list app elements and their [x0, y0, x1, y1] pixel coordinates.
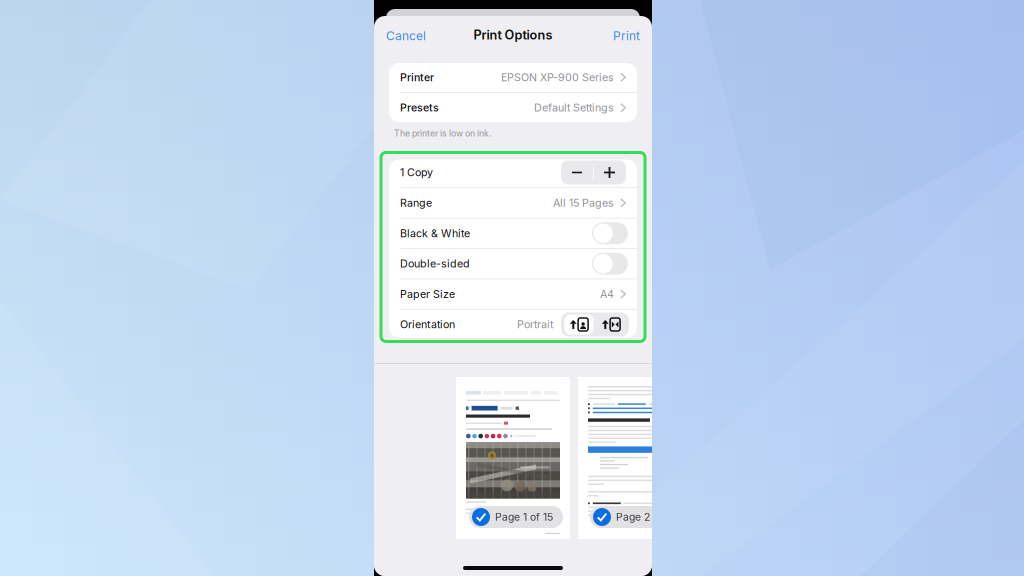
staticText: Paper Size — [400, 288, 455, 300]
staticText: Orientation — [400, 318, 455, 331]
button[interactable]: Double-sided — [592, 253, 628, 275]
staticText: Cancel — [386, 29, 426, 43]
staticText: 1 Copy — [400, 166, 433, 179]
staticText: All 15 Pages — [553, 196, 614, 209]
button[interactable]: Range — [389, 188, 637, 218]
staticText: The printer is low on ink. — [394, 128, 491, 138]
staticText: Printer — [400, 71, 434, 84]
staticText: Presets — [400, 101, 439, 114]
button[interactable]: Landscape orientation — [596, 314, 625, 334]
staticText: Range — [400, 196, 432, 209]
button[interactable]: Presets — [389, 93, 637, 122]
button[interactable]: Page 1 of 15 — [456, 377, 570, 539]
staticText: Page 1 of 15 — [495, 511, 553, 523]
staticText: Print Options — [473, 27, 552, 43]
button[interactable]: Decrease number of copies — [561, 160, 593, 184]
button[interactable]: Page 2 of 15 — [578, 377, 692, 539]
staticText: Black & White — [400, 227, 470, 240]
staticText: Page 2 of 15 — [616, 511, 676, 523]
button[interactable]: Print — [601, 19, 652, 51]
button[interactable]: Paper Size — [389, 279, 637, 309]
staticText: Double-sided — [400, 257, 470, 270]
button[interactable]: Printer — [389, 62, 637, 92]
staticText: Print — [613, 29, 640, 43]
staticText: Default Settings — [534, 101, 614, 114]
button[interactable]: Black & White — [592, 222, 628, 244]
staticText: Portrait — [517, 318, 553, 331]
staticText: A4 — [600, 288, 614, 300]
button[interactable]: Cancel — [374, 19, 438, 51]
button[interactable]: Portrait orientation — [564, 314, 593, 334]
staticText: EPSON XP-900 Series — [501, 71, 614, 84]
button[interactable]: Increase number of copies — [593, 160, 626, 184]
